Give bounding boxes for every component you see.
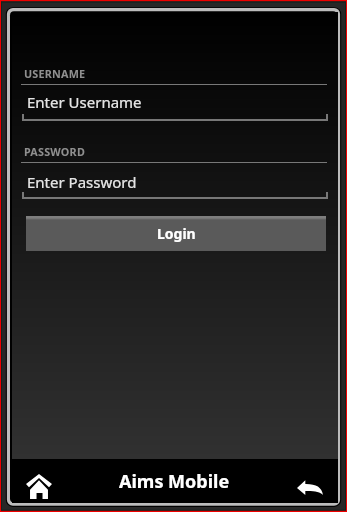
button[interactable]: Login: [26, 216, 326, 251]
staticText: Aims Mobile: [119, 469, 230, 494]
staticText: PASSWORD: [24, 144, 85, 159]
staticText: Login: [157, 224, 196, 243]
button[interactable]: Home: [21, 459, 57, 503]
staticText: Enter Password: [27, 172, 137, 192]
staticText: Enter Username: [27, 92, 142, 112]
button[interactable]: Back: [294, 459, 326, 503]
button[interactable]: [22, 112, 328, 121]
button[interactable]: [22, 190, 328, 199]
staticText: USERNAME: [24, 66, 86, 81]
